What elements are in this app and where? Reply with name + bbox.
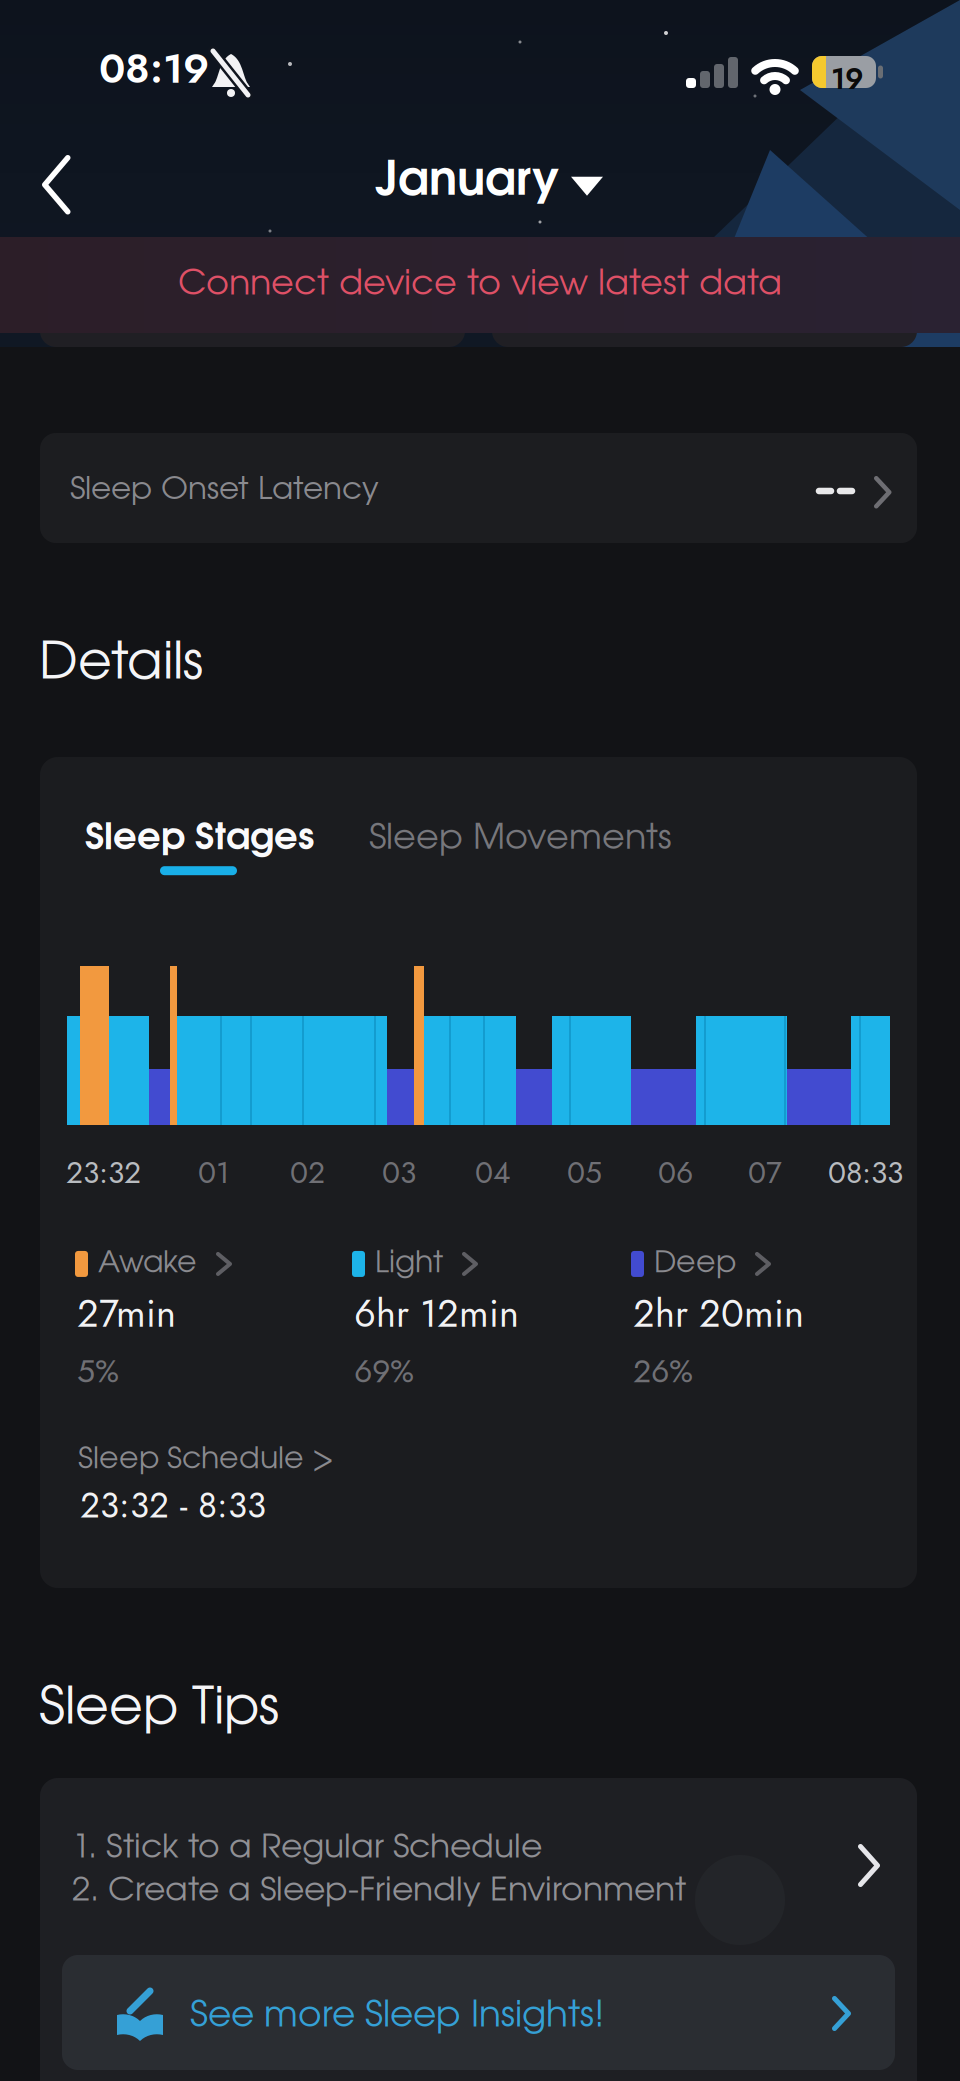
staticText: Sleep Onset Latency bbox=[70, 476, 379, 505]
button[interactable]: 1. Stick to a Regular Schedule bbox=[40, 1778, 917, 1954]
button[interactable] bbox=[40, 300, 465, 347]
button[interactable] bbox=[492, 300, 917, 347]
staticText: 04 bbox=[475, 1151, 510, 1194]
staticText: Details bbox=[39, 640, 203, 688]
staticText: Sleep Stages bbox=[85, 822, 314, 856]
button[interactable]: Sleep Movements bbox=[369, 823, 672, 856]
staticText: 6hr 12min bbox=[354, 1286, 519, 1341]
button[interactable]: See more Sleep Insights! bbox=[62, 1955, 895, 2070]
staticText: 23:32 bbox=[66, 1151, 141, 1194]
staticText: 03 bbox=[382, 1151, 416, 1194]
staticText: 08:33 bbox=[828, 1151, 903, 1194]
staticText: See more Sleep Insights! bbox=[190, 2000, 605, 2033]
button[interactable]: Awake bbox=[75, 1250, 232, 1278]
staticText: 2. Create a Sleep-Friendly Environment bbox=[72, 1876, 686, 1907]
button[interactable]: Sleep Stages bbox=[85, 822, 314, 875]
staticText: 05 bbox=[567, 1151, 602, 1194]
button[interactable]: Light bbox=[352, 1250, 478, 1278]
staticText: Sleep Movements bbox=[369, 823, 672, 856]
staticText: Sleep Schedule > bbox=[78, 1446, 334, 1474]
button[interactable] bbox=[22, 135, 90, 234]
button[interactable]: Sleep Onset Latency bbox=[40, 433, 917, 543]
button[interactable]: January bbox=[375, 160, 603, 203]
staticText: Deep bbox=[654, 1250, 736, 1278]
staticText: 27min bbox=[77, 1286, 176, 1341]
staticText: 69% bbox=[354, 1348, 414, 1394]
staticText: 02 bbox=[290, 1151, 325, 1194]
staticText: 01 bbox=[198, 1151, 230, 1194]
staticText: 2hr 20min bbox=[633, 1286, 804, 1341]
staticText: Connect device to view latest data bbox=[178, 269, 782, 301]
staticText: 5% bbox=[77, 1348, 119, 1394]
staticText: Light bbox=[375, 1250, 443, 1278]
staticText: Sleep Tips bbox=[39, 1685, 279, 1733]
staticText: 08:19 bbox=[99, 39, 209, 98]
staticText: 26% bbox=[633, 1348, 693, 1394]
staticText: 07 bbox=[748, 1151, 782, 1194]
staticText: January bbox=[375, 160, 559, 203]
staticText: 23:32 - 8:33 bbox=[80, 1480, 266, 1531]
button[interactable]: Sleep Schedule > bbox=[78, 1446, 358, 1546]
staticText: 1. Stick to a Regular Schedule bbox=[72, 1833, 542, 1864]
staticText: Awake bbox=[98, 1250, 197, 1278]
button[interactable]: Connect device to view latest data bbox=[0, 237, 960, 333]
button[interactable]: Deep bbox=[631, 1250, 771, 1278]
staticText: 19 bbox=[831, 58, 864, 100]
staticText: 06 bbox=[658, 1151, 693, 1194]
